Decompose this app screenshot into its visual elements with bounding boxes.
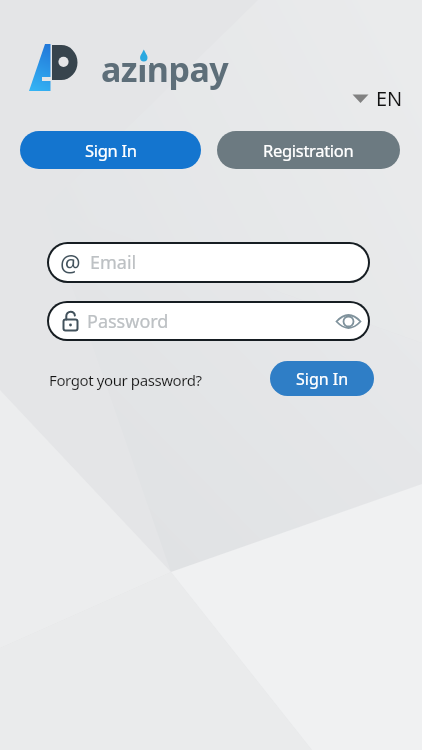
staticText: azinpay bbox=[101, 46, 229, 92]
staticText: Password bbox=[87, 309, 169, 334]
staticText: Email bbox=[90, 250, 137, 275]
button[interactable]: Forgot your password? bbox=[49, 370, 202, 390]
staticText: Registration bbox=[263, 139, 354, 161]
staticText: Sign In bbox=[85, 139, 137, 161]
button[interactable]: Sign In bbox=[270, 361, 374, 396]
button[interactable] bbox=[336, 313, 361, 330]
staticText: @ bbox=[60, 247, 81, 278]
button[interactable]: @ bbox=[47, 242, 370, 283]
staticText: Sign In bbox=[296, 368, 349, 390]
button[interactable]: EN bbox=[347, 80, 408, 117]
staticText: EN bbox=[376, 85, 403, 112]
button[interactable]: Sign In bbox=[20, 131, 201, 169]
button[interactable]: Password bbox=[47, 301, 370, 341]
button[interactable]: Registration bbox=[217, 131, 400, 169]
